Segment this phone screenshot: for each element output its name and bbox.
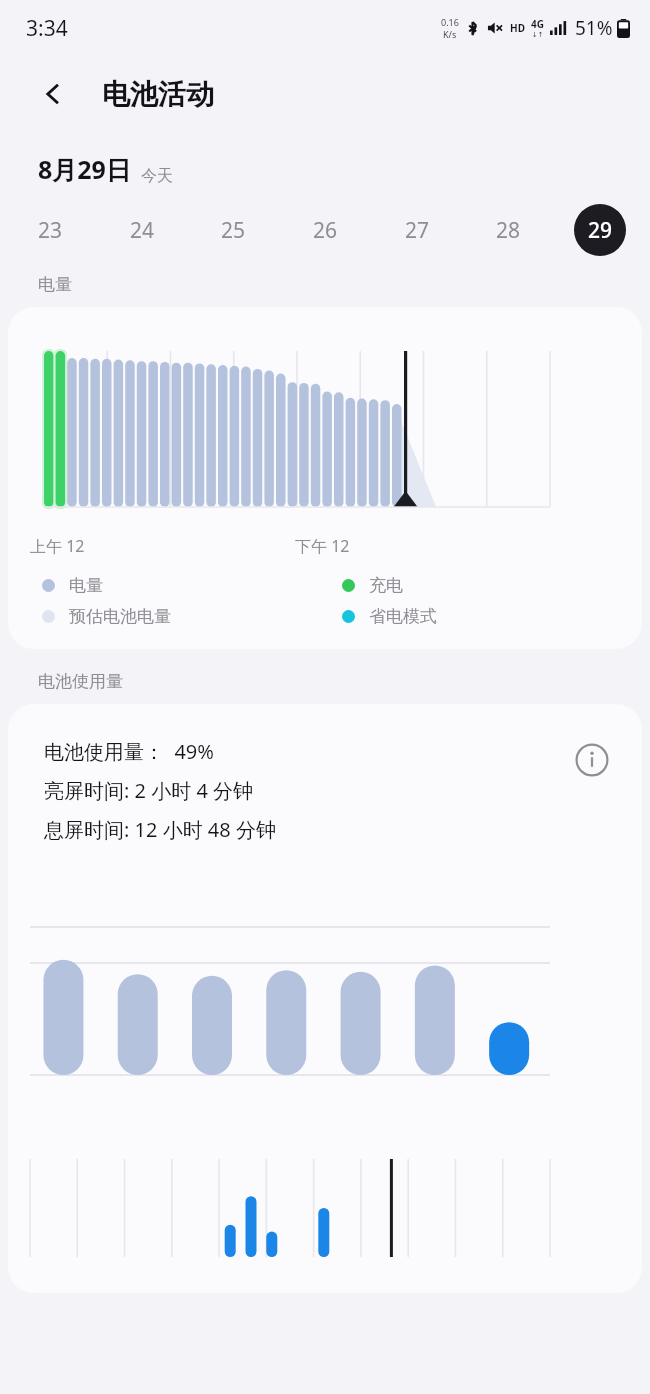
- button[interactable]: 信息: [570, 738, 614, 782]
- button[interactable]: 返回: [30, 70, 78, 118]
- staticText: 25: [221, 216, 246, 245]
- staticText: K/s: [443, 28, 457, 40]
- button[interactable]: 24: [116, 204, 168, 256]
- staticText: 51%: [575, 15, 613, 41]
- staticText: 29: [588, 216, 613, 245]
- staticText: 4G: [531, 17, 544, 31]
- staticText: 28: [496, 216, 521, 245]
- button[interactable]: 电池使用量： 49%: [8, 704, 642, 1293]
- staticText: 亮屏时间: 2 小时 4 分钟: [44, 777, 254, 804]
- staticText: 26: [313, 216, 338, 245]
- staticText: 24: [130, 216, 155, 245]
- staticText: 上午 12: [30, 535, 85, 557]
- button[interactable]: 29: [574, 204, 626, 256]
- button[interactable]: 25: [207, 204, 259, 256]
- staticText: 充电: [369, 575, 403, 596]
- staticText: 23: [38, 216, 63, 245]
- button[interactable]: 27: [391, 204, 443, 256]
- staticText: 电池活动: [102, 77, 214, 112]
- staticText: 今天: [141, 166, 173, 186]
- staticText: HD: [510, 21, 525, 35]
- staticText: 8月29日: [38, 152, 131, 186]
- staticText: 电池使用量： 49%: [44, 738, 214, 765]
- button[interactable]: 上午 12: [8, 307, 642, 649]
- staticText: 息屏时间: 12 小时 48 分钟: [44, 816, 276, 843]
- staticText: 省电模式: [369, 606, 437, 627]
- button[interactable]: 23: [24, 204, 76, 256]
- button[interactable]: 26: [299, 204, 351, 256]
- staticText: 3:34: [26, 14, 68, 43]
- staticText: ↓↑: [532, 31, 544, 39]
- staticText: 预估电池电量: [69, 606, 171, 627]
- staticText: 电量: [69, 575, 103, 596]
- button[interactable]: 28: [482, 204, 534, 256]
- staticText: 27: [405, 216, 430, 245]
- staticText: 电量: [38, 274, 72, 295]
- staticText: 电池使用量: [38, 671, 123, 692]
- staticText: 下午 12: [295, 535, 350, 557]
- staticText: 0.16: [441, 16, 459, 28]
